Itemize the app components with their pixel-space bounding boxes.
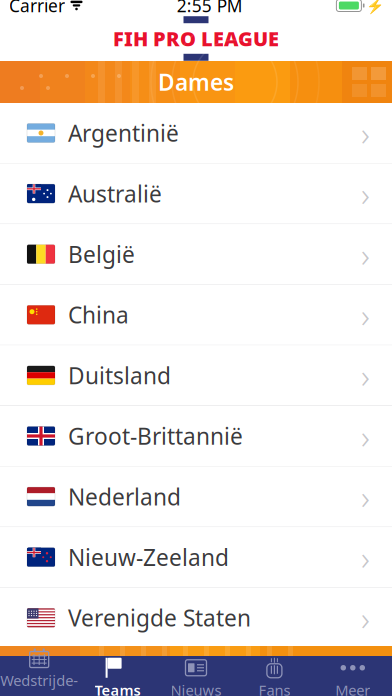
staticText: › bbox=[361, 414, 370, 458]
staticText: Fans bbox=[258, 680, 290, 696]
staticText: Nederland bbox=[68, 481, 181, 512]
staticText: Verenigde Staten bbox=[68, 603, 251, 633]
staticText: › bbox=[361, 535, 370, 579]
staticText: › bbox=[361, 171, 370, 216]
staticText: Groot-Brittannië bbox=[68, 421, 243, 451]
button[interactable]: Nieuw-Zeeland bbox=[0, 527, 392, 588]
button[interactable]: Wedstrijden bbox=[0, 656, 78, 696]
button[interactable]: Groot-Brittannië bbox=[0, 406, 392, 467]
button[interactable]: Nieuws bbox=[157, 656, 235, 696]
staticText: Duitsland bbox=[68, 360, 171, 390]
staticText: 2:55 PM bbox=[177, 0, 243, 17]
staticText: China bbox=[68, 300, 129, 330]
button[interactable]: België bbox=[0, 224, 392, 285]
staticText: › bbox=[361, 353, 370, 398]
staticText: FIH PRO LEAGUE bbox=[113, 25, 279, 52]
staticText: Wedstrijden bbox=[0, 670, 78, 696]
button[interactable]: Teams bbox=[78, 656, 157, 696]
staticText: Australië bbox=[68, 178, 162, 209]
staticText: ⚡ bbox=[366, 0, 384, 14]
button[interactable]: Argentinië bbox=[0, 103, 392, 164]
staticText: Teams bbox=[95, 680, 141, 696]
staticText: › bbox=[361, 293, 370, 337]
staticText: › bbox=[361, 474, 370, 519]
staticText: Argentinië bbox=[68, 118, 179, 148]
button[interactable]: Nederland bbox=[0, 467, 392, 527]
button[interactable]: Meer bbox=[314, 656, 392, 696]
button[interactable]: Fans bbox=[235, 656, 314, 696]
button[interactable]: Australië bbox=[0, 164, 392, 224]
button[interactable]: China bbox=[0, 285, 392, 345]
staticText: › bbox=[361, 232, 370, 276]
button[interactable]: Duitsland bbox=[0, 345, 392, 406]
staticText: Meer bbox=[335, 680, 370, 696]
staticText: › bbox=[361, 596, 370, 640]
staticText: › bbox=[361, 111, 370, 155]
staticText: Carrier bbox=[9, 0, 65, 17]
staticText: Nieuws bbox=[170, 680, 221, 696]
staticText: België bbox=[68, 239, 135, 269]
staticText: Nieuw-Zeeland bbox=[68, 542, 229, 572]
staticText: Dames bbox=[158, 67, 234, 97]
button[interactable]: Verenigde Staten bbox=[0, 588, 392, 648]
